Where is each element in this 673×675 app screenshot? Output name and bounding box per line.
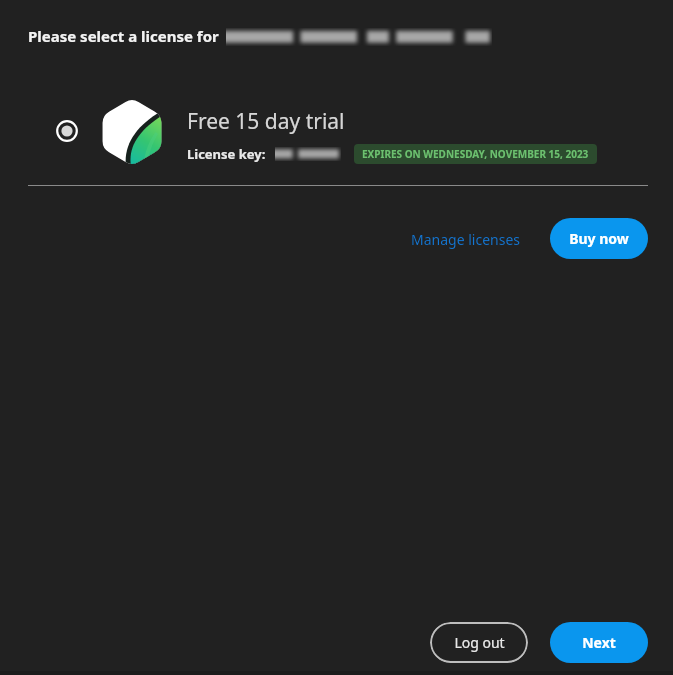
- button[interactable]: Select Free 15 day trial license: [51, 115, 83, 147]
- staticText: Free 15 day trial: [187, 107, 345, 136]
- staticText: Next: [582, 633, 616, 652]
- button[interactable]: Buy now: [550, 218, 648, 259]
- staticText: Buy now: [569, 229, 629, 248]
- staticText: EXPIRES ON WEDNESDAY, NOVEMBER 15, 2023: [362, 147, 589, 161]
- button[interactable]: Log out: [430, 622, 528, 663]
- staticText: Please select a license for: [28, 26, 219, 46]
- staticText: Log out: [454, 633, 505, 652]
- button[interactable]: Manage licenses: [400, 224, 532, 255]
- button[interactable]: Next: [550, 622, 648, 663]
- staticText: Manage licenses: [411, 230, 521, 249]
- staticText: License key:: [187, 145, 266, 163]
